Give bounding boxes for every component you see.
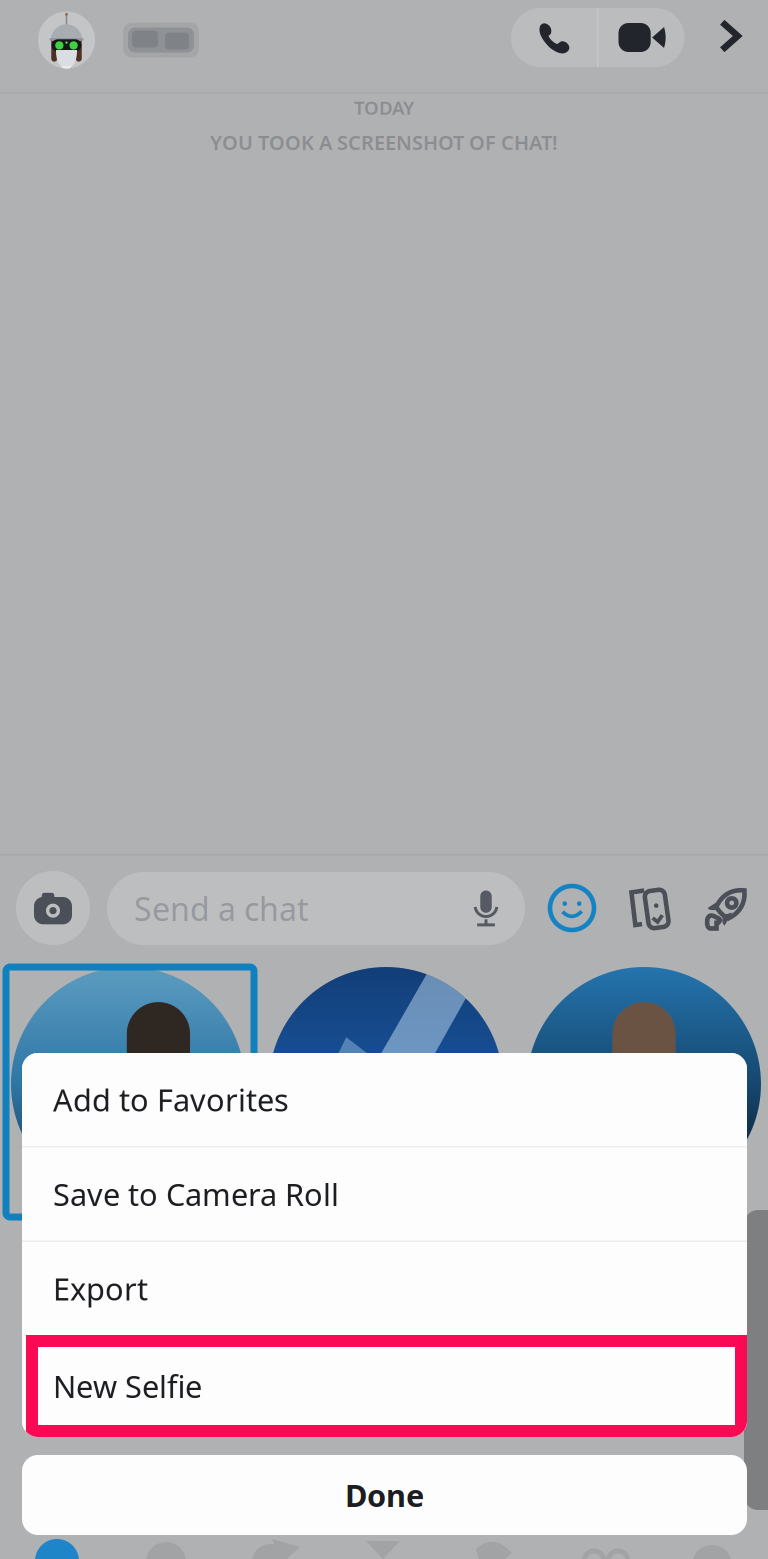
button[interactable]: Rocket: [698, 880, 754, 936]
button[interactable]: Video call: [598, 8, 684, 67]
staticText: New Selfie: [53, 1366, 202, 1406]
staticText: Export: [53, 1268, 148, 1309]
button[interactable]: New Selfie: [22, 1335, 747, 1437]
button[interactable]: Send a chat: [107, 872, 525, 945]
button[interactable]: Voice call: [511, 8, 597, 67]
staticText: YOU TOOK A SCREENSHOT OF CHAT!: [210, 129, 558, 156]
button[interactable]: Camera: [16, 871, 90, 945]
staticText: Save to Camera Roll: [53, 1174, 339, 1214]
staticText: Add to Favorites: [53, 1079, 289, 1120]
button[interactable]: Done: [22, 1455, 747, 1535]
button[interactable]: Stickers: [544, 880, 600, 936]
button[interactable]: Export: [22, 1242, 747, 1335]
button[interactable]: Cameos: [621, 880, 677, 936]
staticText: Send a chat: [134, 887, 309, 930]
button[interactable]: Add to Favorites: [22, 1053, 747, 1146]
button[interactable]: Save to Camera Roll: [22, 1147, 747, 1240]
button[interactable]: Profile: [38, 8, 248, 72]
staticText: Done: [345, 1475, 424, 1515]
button[interactable]: Open profile: [702, 8, 758, 64]
staticText: TODAY: [354, 95, 414, 120]
